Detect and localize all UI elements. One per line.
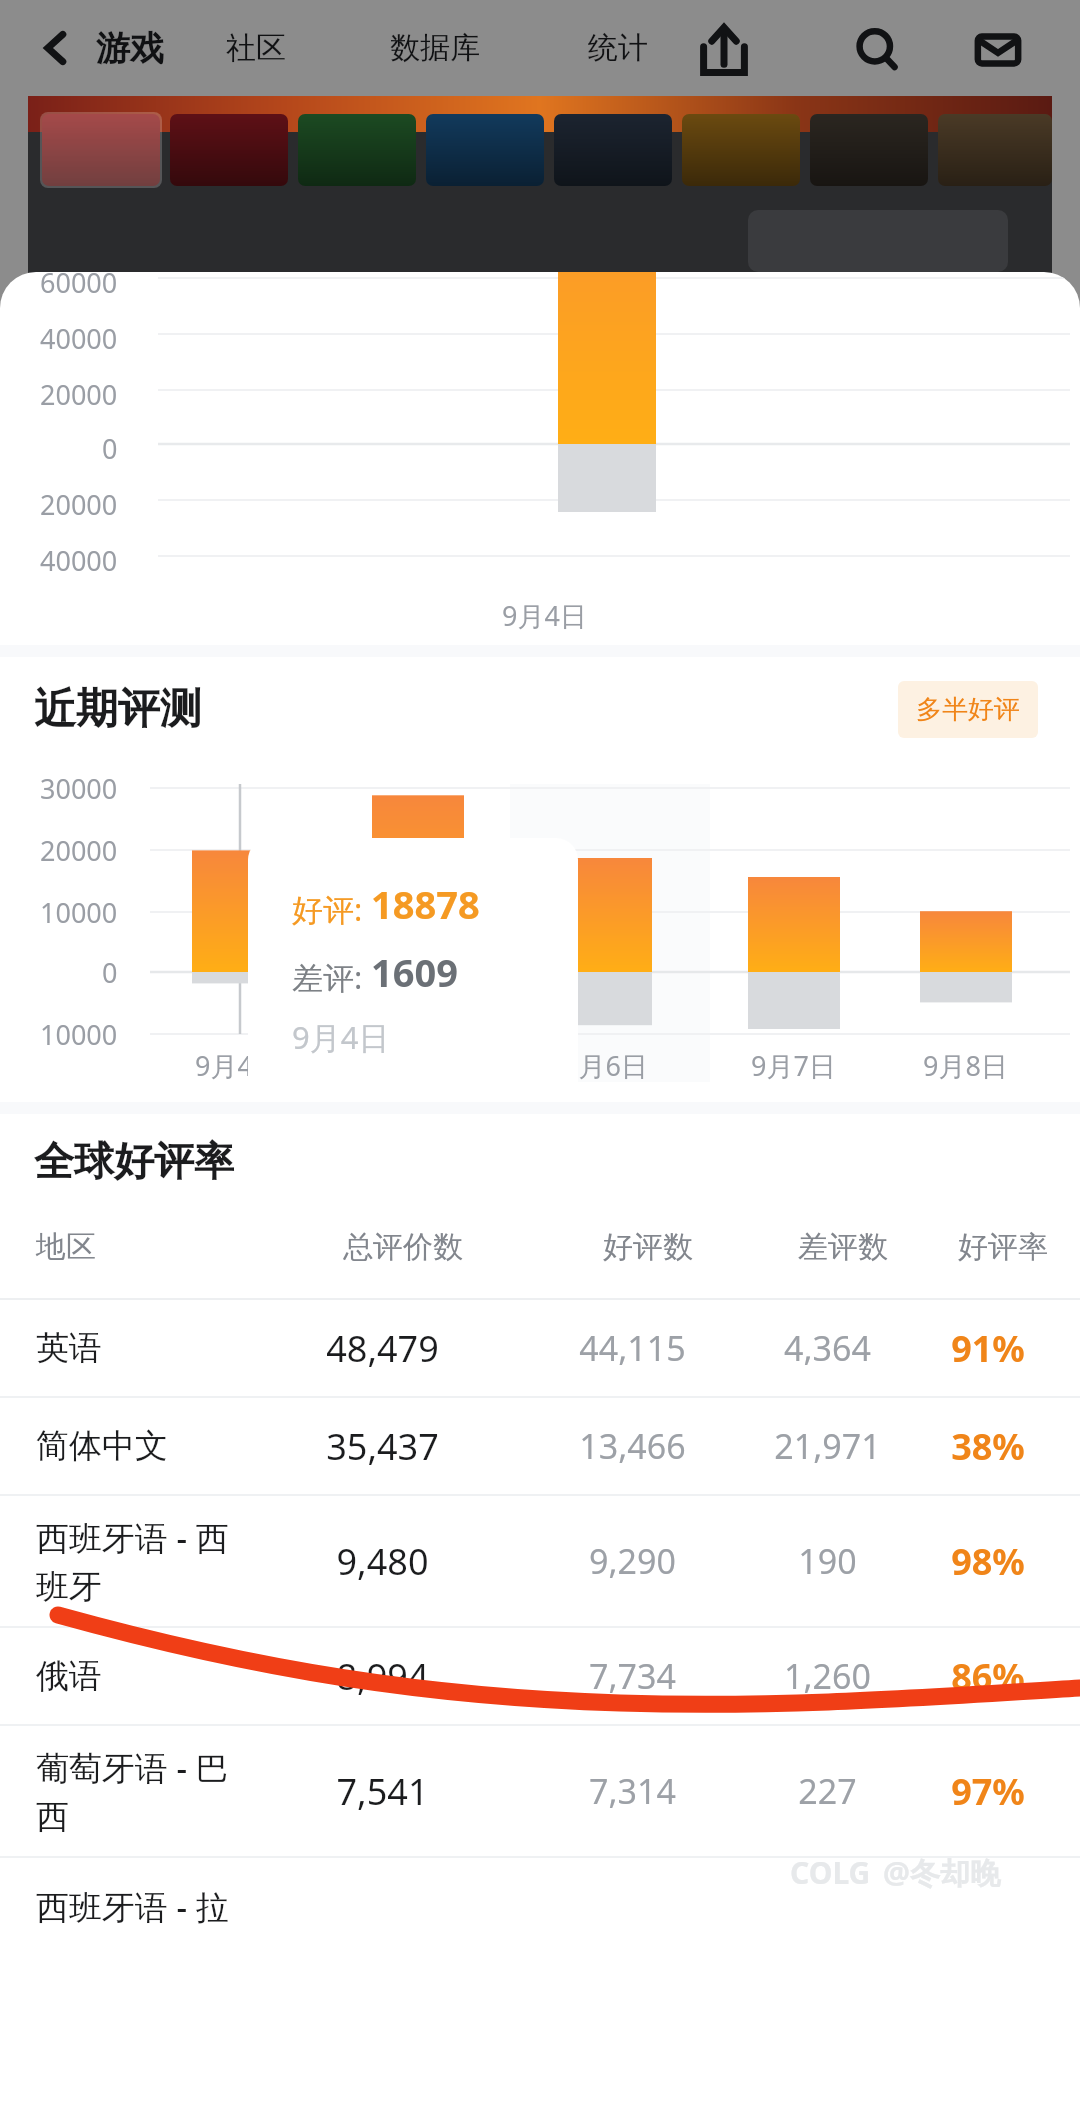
staticText: 60000 (40, 272, 118, 301)
button[interactable]: 西班牙语 - 拉 (0, 1858, 1080, 1954)
staticText: 9,290 (589, 1538, 676, 1584)
staticText: 190 (798, 1538, 857, 1584)
staticText: 好评率 (958, 1228, 1048, 1266)
staticText: 1609 (371, 946, 458, 998)
staticText: 俄语 (36, 1655, 102, 1697)
staticText: 7,541 (336, 1767, 429, 1816)
staticText: 91% (951, 1324, 1025, 1373)
button[interactable]: Search (842, 14, 914, 86)
button[interactable]: 统计 (588, 18, 648, 78)
staticText: 86% (951, 1652, 1025, 1701)
staticText: 9,480 (336, 1537, 429, 1586)
staticText: 近期评测 (34, 683, 202, 736)
staticText: 44,115 (579, 1325, 686, 1371)
staticText: 英语 (36, 1327, 102, 1369)
staticText: 97% (951, 1767, 1025, 1816)
staticText: 9月4日 (195, 1047, 280, 1084)
button[interactable]: 俄语 (0, 1628, 1080, 1724)
staticText: 差评: (292, 956, 371, 998)
button[interactable]: 游戏 (96, 18, 164, 78)
button[interactable]: 英语 (0, 1300, 1080, 1396)
staticText: 简体中文 (36, 1425, 168, 1467)
button[interactable]: 葡萄牙语 - 巴 西 (0, 1726, 1080, 1856)
staticText: 38% (951, 1422, 1025, 1471)
button[interactable]: 简体中文 (0, 1398, 1080, 1494)
staticText: 9月8日 (923, 1047, 1008, 1084)
staticText: 10000 (40, 1016, 118, 1053)
staticText: 西班牙语 - 西 班牙 (36, 1515, 229, 1608)
staticText: @冬却晚 (883, 1852, 1000, 1893)
staticText: 48,479 (326, 1324, 439, 1373)
staticText: 8,994 (336, 1652, 429, 1701)
staticText: 227 (798, 1768, 857, 1814)
staticText: 地区 (36, 1228, 96, 1266)
staticText: 统计 (588, 29, 648, 67)
staticText: 多半好评 (916, 693, 1020, 726)
staticText: 好评: (292, 888, 371, 930)
staticText: 20000 (40, 376, 118, 413)
staticText: 21,971 (774, 1423, 881, 1469)
staticText: 20000 (40, 486, 118, 523)
staticText: COLG (790, 1852, 871, 1893)
staticText: 98% (951, 1537, 1025, 1586)
staticText: 13,466 (579, 1423, 686, 1469)
button[interactable]: 西班牙语 - 西 班牙 (0, 1496, 1080, 1626)
staticText: 总评价数 (343, 1228, 463, 1266)
staticText: 20000 (40, 832, 118, 869)
staticText: 30000 (40, 770, 118, 807)
staticText: 差评数 (798, 1228, 888, 1266)
staticText: 9月4日 (502, 597, 587, 634)
staticText: 7,734 (589, 1653, 676, 1699)
staticText: 数据库 (390, 29, 480, 67)
staticText: 游戏 (96, 27, 164, 70)
staticText: 35,437 (326, 1422, 439, 1471)
staticText: 9月4日 (292, 1016, 390, 1058)
button[interactable]: 数据库 (390, 18, 480, 78)
staticText: 9月5日 (375, 1047, 460, 1084)
staticText: 4,364 (784, 1325, 871, 1371)
staticText: 40000 (40, 320, 118, 357)
staticText: 1,260 (784, 1653, 871, 1699)
staticText: 10000 (40, 894, 118, 931)
staticText: 西班牙语 - 拉 (36, 1884, 229, 1929)
staticText: 0 (102, 954, 118, 991)
staticText: 好评数 (603, 1228, 693, 1266)
staticText: 9月6日 (563, 1047, 648, 1084)
button[interactable]: 多半好评 (898, 681, 1038, 738)
staticText: 9月7日 (751, 1047, 836, 1084)
staticText: 0 (102, 430, 118, 467)
staticText: 7,314 (589, 1768, 676, 1814)
staticText: 40000 (40, 542, 118, 579)
staticText: 全球好评率 (34, 1136, 234, 1186)
button[interactable]: Messages (962, 14, 1034, 86)
button[interactable]: Back (18, 10, 94, 86)
staticText: 社区 (226, 29, 286, 67)
staticText: 18878 (371, 878, 480, 930)
button[interactable]: 社区 (226, 18, 286, 78)
staticText: 葡萄牙语 - 巴 西 (36, 1745, 229, 1838)
